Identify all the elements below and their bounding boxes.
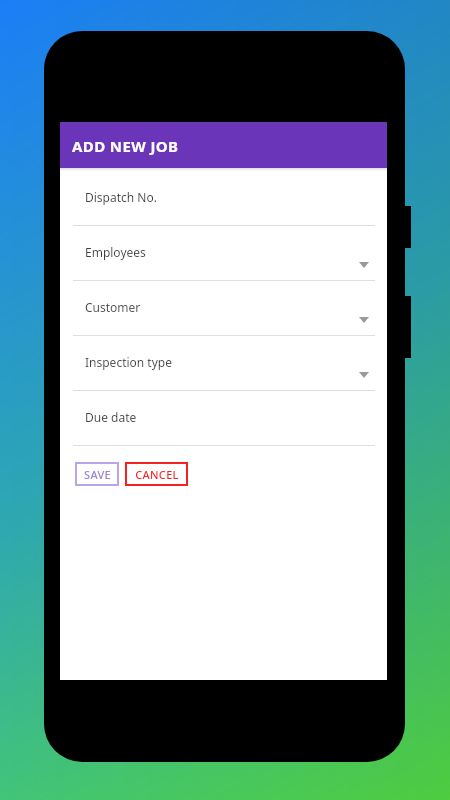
staticText: Due date [85,409,137,425]
button[interactable]: Dispatch No. [60,171,387,226]
staticText: Employees [85,244,146,260]
button[interactable]: SAVE [75,462,119,486]
staticText: Customer [85,299,141,315]
staticText: SAVE [84,467,111,482]
button[interactable]: Inspection type [60,336,387,391]
staticText: Inspection type [85,354,172,370]
button[interactable]: Employees [60,226,387,281]
staticText: CANCEL [135,467,179,482]
button[interactable]: Due date [60,391,387,446]
other: Open Employees dropdown [359,262,369,268]
button[interactable]: CANCEL [125,462,188,486]
button[interactable]: Customer [60,281,387,336]
staticText: Dispatch No. [85,189,157,205]
other: Open Inspection type dropdown [359,372,369,378]
other: Open Customer dropdown [359,317,369,323]
staticText: ADD NEW JOB [72,136,179,156]
